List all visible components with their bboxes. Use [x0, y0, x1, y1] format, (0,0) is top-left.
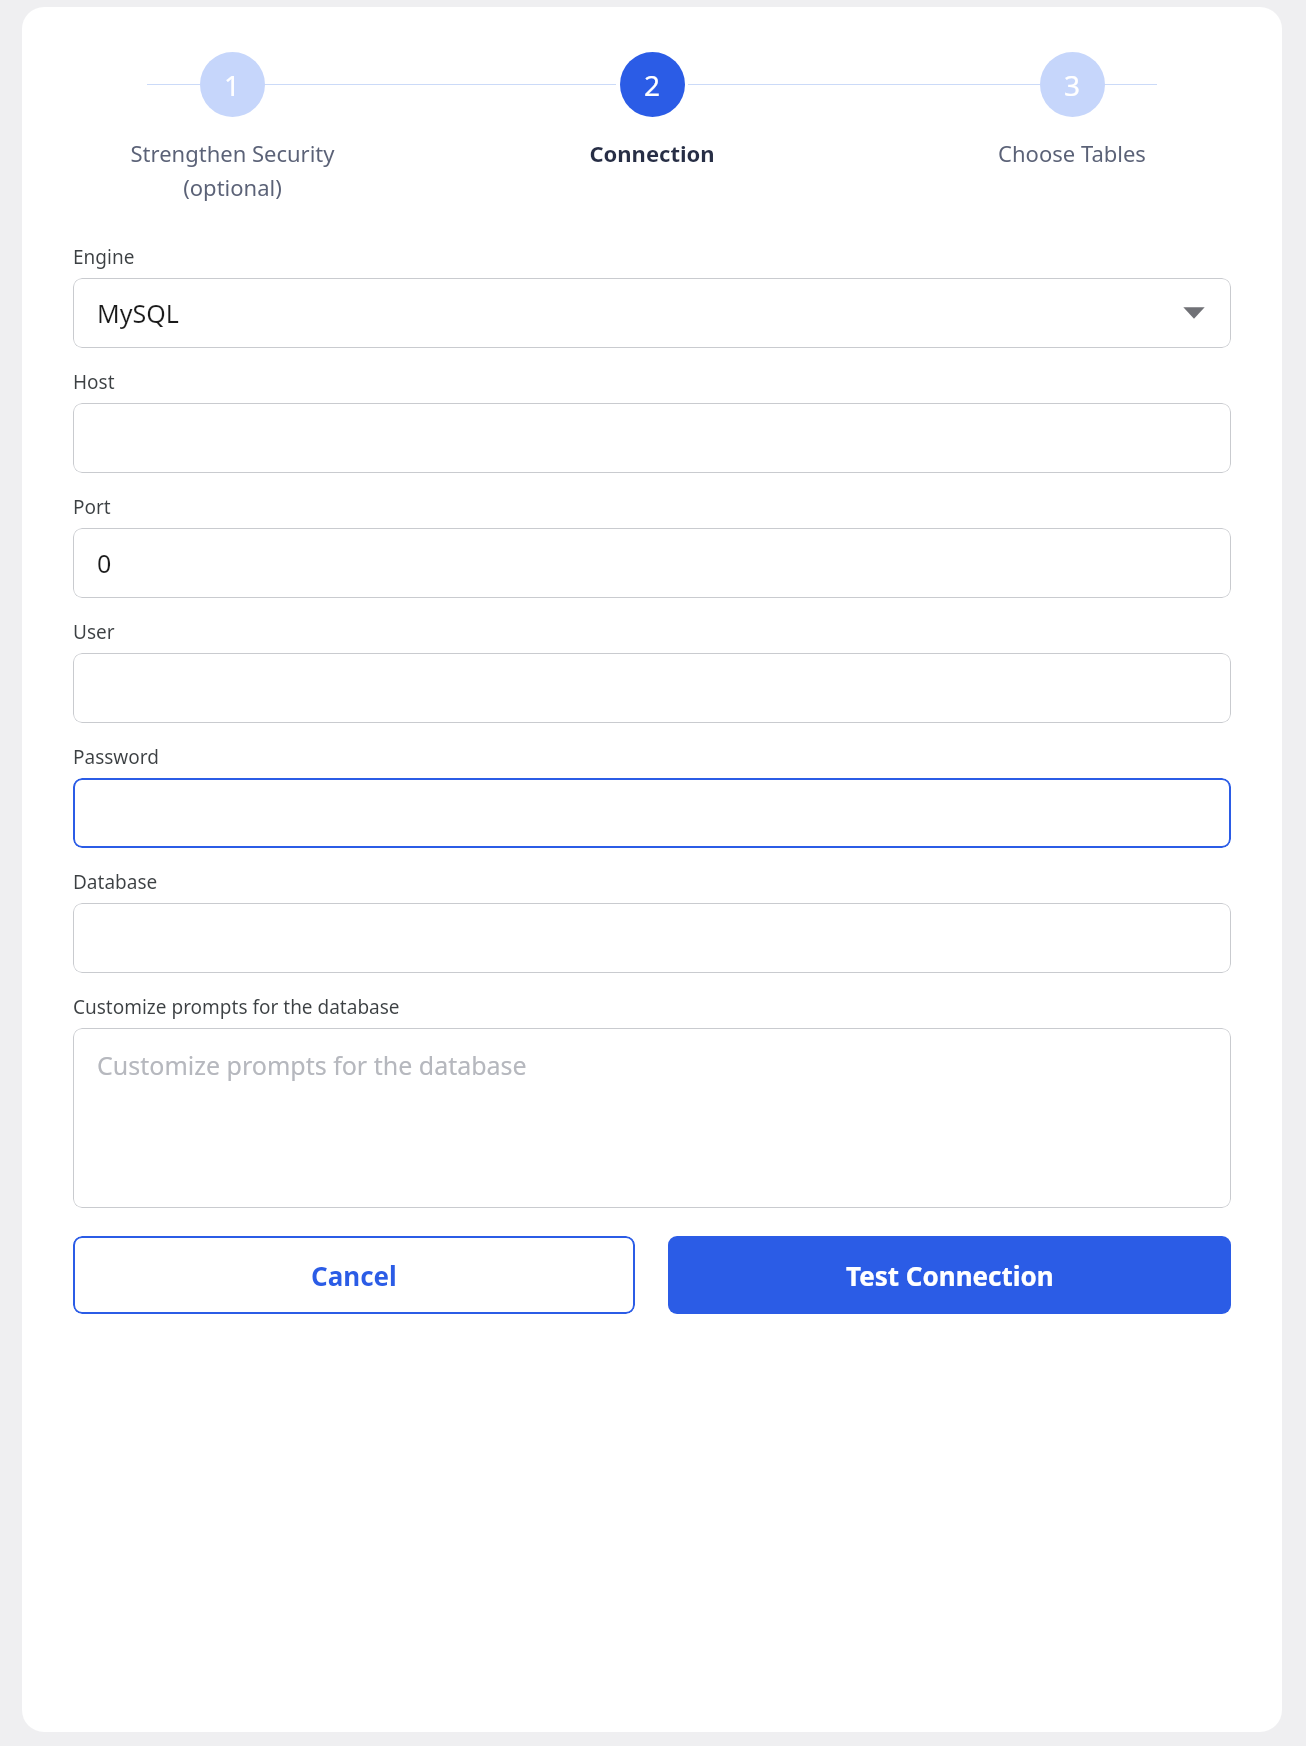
staticText: 2	[644, 66, 661, 104]
button[interactable]: 0	[73, 528, 1231, 598]
button[interactable]: 2	[442, 52, 862, 168]
staticText: Customize prompts for the database	[97, 1048, 527, 1082]
staticText: Customize prompts for the database	[73, 994, 400, 1020]
staticText: Connection	[589, 138, 715, 168]
staticText: Choose Tables	[998, 138, 1146, 168]
staticText: MySQL	[97, 296, 179, 330]
staticText: Strengthen Security	[130, 138, 335, 168]
other: Open engine dropdown	[1181, 300, 1207, 326]
staticText: Engine	[73, 244, 135, 270]
button[interactable]: Test Connection	[668, 1236, 1231, 1314]
staticText: Host	[73, 369, 115, 395]
staticText: Test Connection	[846, 1258, 1054, 1293]
button[interactable]	[73, 778, 1231, 848]
button[interactable]: Customize prompts for the database	[73, 1028, 1231, 1208]
button[interactable]: 1	[22, 52, 442, 202]
staticText: 0	[97, 546, 112, 580]
button[interactable]: Cancel	[73, 1236, 635, 1314]
staticText: Database	[73, 869, 158, 895]
staticText: 1	[224, 66, 241, 104]
button[interactable]: 3	[862, 52, 1282, 168]
button[interactable]	[73, 653, 1231, 723]
staticText: 3	[1064, 66, 1081, 104]
staticText: (optional)	[183, 172, 282, 202]
staticText: Port	[73, 494, 111, 520]
staticText: User	[73, 619, 115, 645]
staticText: Password	[73, 744, 159, 770]
button[interactable]	[73, 403, 1231, 473]
button[interactable]	[73, 903, 1231, 973]
staticText: Cancel	[311, 1258, 397, 1293]
button[interactable]: MySQL	[73, 278, 1231, 348]
